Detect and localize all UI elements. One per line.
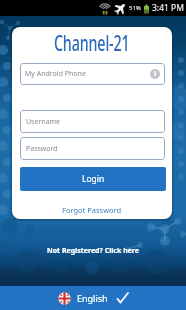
staticText: 51% <box>129 4 141 12</box>
button[interactable]: Not Registered? Click here <box>45 244 142 258</box>
staticText: English <box>77 292 108 304</box>
button[interactable]: Login <box>20 167 166 191</box>
staticText: Channel-21 <box>54 29 130 58</box>
staticText: 3:41 PM <box>152 2 184 14</box>
staticText: Not Registered? Click here <box>47 246 140 256</box>
staticText: Login <box>82 173 105 185</box>
button[interactable]: Username <box>20 110 165 133</box>
button[interactable]: Forgot Password <box>58 201 126 219</box>
button[interactable]: My Android Phone <box>20 63 165 85</box>
staticText: Username <box>26 117 61 127</box>
staticText: My Android Phone <box>25 69 86 79</box>
button[interactable]: Password <box>20 137 165 160</box>
staticText: Forgot Password <box>62 205 122 215</box>
button[interactable]: English <box>0 286 186 310</box>
staticText: i <box>154 69 157 79</box>
staticText: Password <box>26 144 58 154</box>
